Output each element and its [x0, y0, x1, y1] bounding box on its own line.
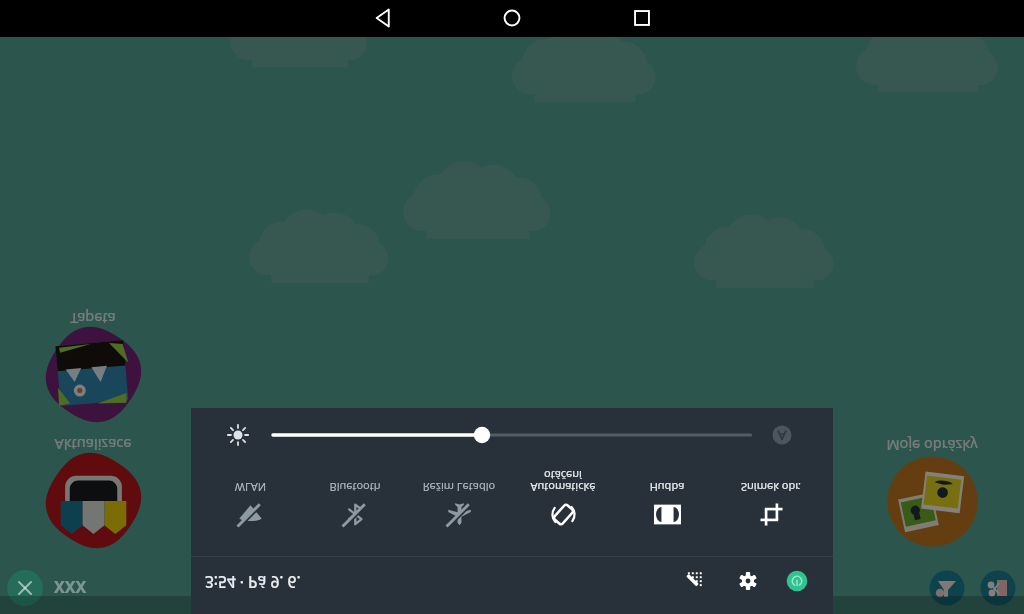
button[interactable]: Hudba: [615, 480, 719, 526]
button[interactable]: Poslední aplikace: [620, 0, 663, 37]
button[interactable]: Moje obrázky: [872, 433, 992, 550]
button[interactable]: Zpět: [361, 0, 404, 37]
staticText: Režim Letadlo: [407, 480, 511, 495]
button[interactable]: Bluetooth: [303, 480, 407, 526]
staticText: XXX: [54, 576, 87, 598]
staticText: Aktualizace: [33, 435, 153, 455]
button[interactable]: Snímek obr.: [719, 480, 823, 526]
button[interactable]: Automatické otáčení: [511, 468, 615, 526]
staticText: WLAN: [198, 480, 303, 495]
button[interactable]: Tapeta: [33, 306, 153, 423]
button[interactable]: Domů: [490, 0, 533, 37]
button[interactable]: Upravit dlaždice: [679, 567, 707, 595]
button[interactable]: Aktualizace: [33, 432, 153, 549]
staticText: 3:54 · Pá 9. 6.: [205, 572, 301, 593]
button[interactable]: Nastavení: [734, 567, 762, 595]
button[interactable]: Vypnout: [783, 567, 811, 595]
staticText: Hudba: [615, 480, 719, 495]
staticText: Automatické otáčení: [511, 468, 615, 495]
staticText: Moje obrázky: [872, 436, 992, 456]
button[interactable]: WLAN: [198, 480, 303, 526]
staticText: Snímek obr.: [719, 480, 823, 495]
staticText: Tapeta: [33, 309, 153, 329]
staticText: Bluetooth: [303, 480, 407, 495]
button[interactable]: Režim Letadlo: [407, 480, 511, 526]
